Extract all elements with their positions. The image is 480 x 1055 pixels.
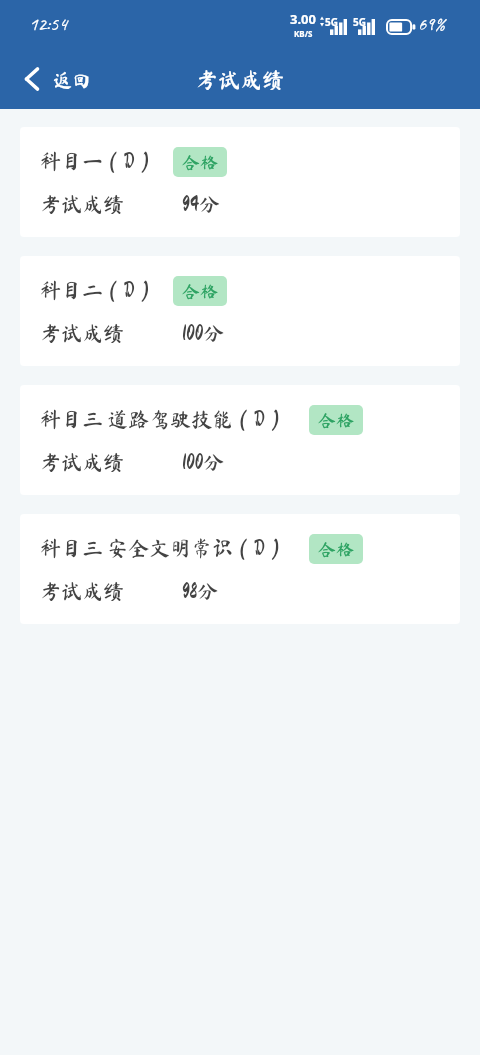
staticText: 12:54 xyxy=(29,12,67,36)
staticText: 科目二（D） xyxy=(40,280,156,301)
staticText: 考试成绩 xyxy=(40,194,124,215)
button[interactable]: 科目三 安全文明常识（D） xyxy=(20,514,460,624)
button[interactable]: 科目一（D） xyxy=(20,127,460,237)
staticText: 返回 xyxy=(53,70,92,89)
staticText: 100分 xyxy=(182,323,225,344)
staticText: 考试成绩 xyxy=(196,69,285,91)
button[interactable]: 科目三 道路驾驶技能（D） xyxy=(20,385,460,495)
button[interactable]: 科目二（D） xyxy=(20,256,460,366)
staticText: 5G xyxy=(353,15,366,29)
staticText: 合格 xyxy=(182,282,218,300)
staticText: 合格 xyxy=(318,540,354,558)
staticText: 科目三 道路驾驶技能（D） xyxy=(40,409,286,430)
staticText: 100分 xyxy=(182,452,225,473)
staticText: 考试成绩 xyxy=(40,323,124,344)
staticText: 94分 xyxy=(182,194,221,215)
staticText: 98分 xyxy=(182,581,219,602)
staticText: 5G xyxy=(325,15,338,29)
staticText: 科目三 安全文明常识（D） xyxy=(40,538,286,559)
button[interactable]: 返回 xyxy=(0,58,106,100)
staticText: 科目一（D） xyxy=(40,151,156,172)
staticText: 3.00 xyxy=(290,10,316,28)
staticText: 69% xyxy=(418,13,445,36)
staticText: 考试成绩 xyxy=(40,581,124,602)
staticText: 合格 xyxy=(318,411,354,429)
staticText: 考试成绩 xyxy=(40,452,124,473)
staticText: 合格 xyxy=(182,153,218,171)
staticText: KB/S xyxy=(294,28,313,39)
